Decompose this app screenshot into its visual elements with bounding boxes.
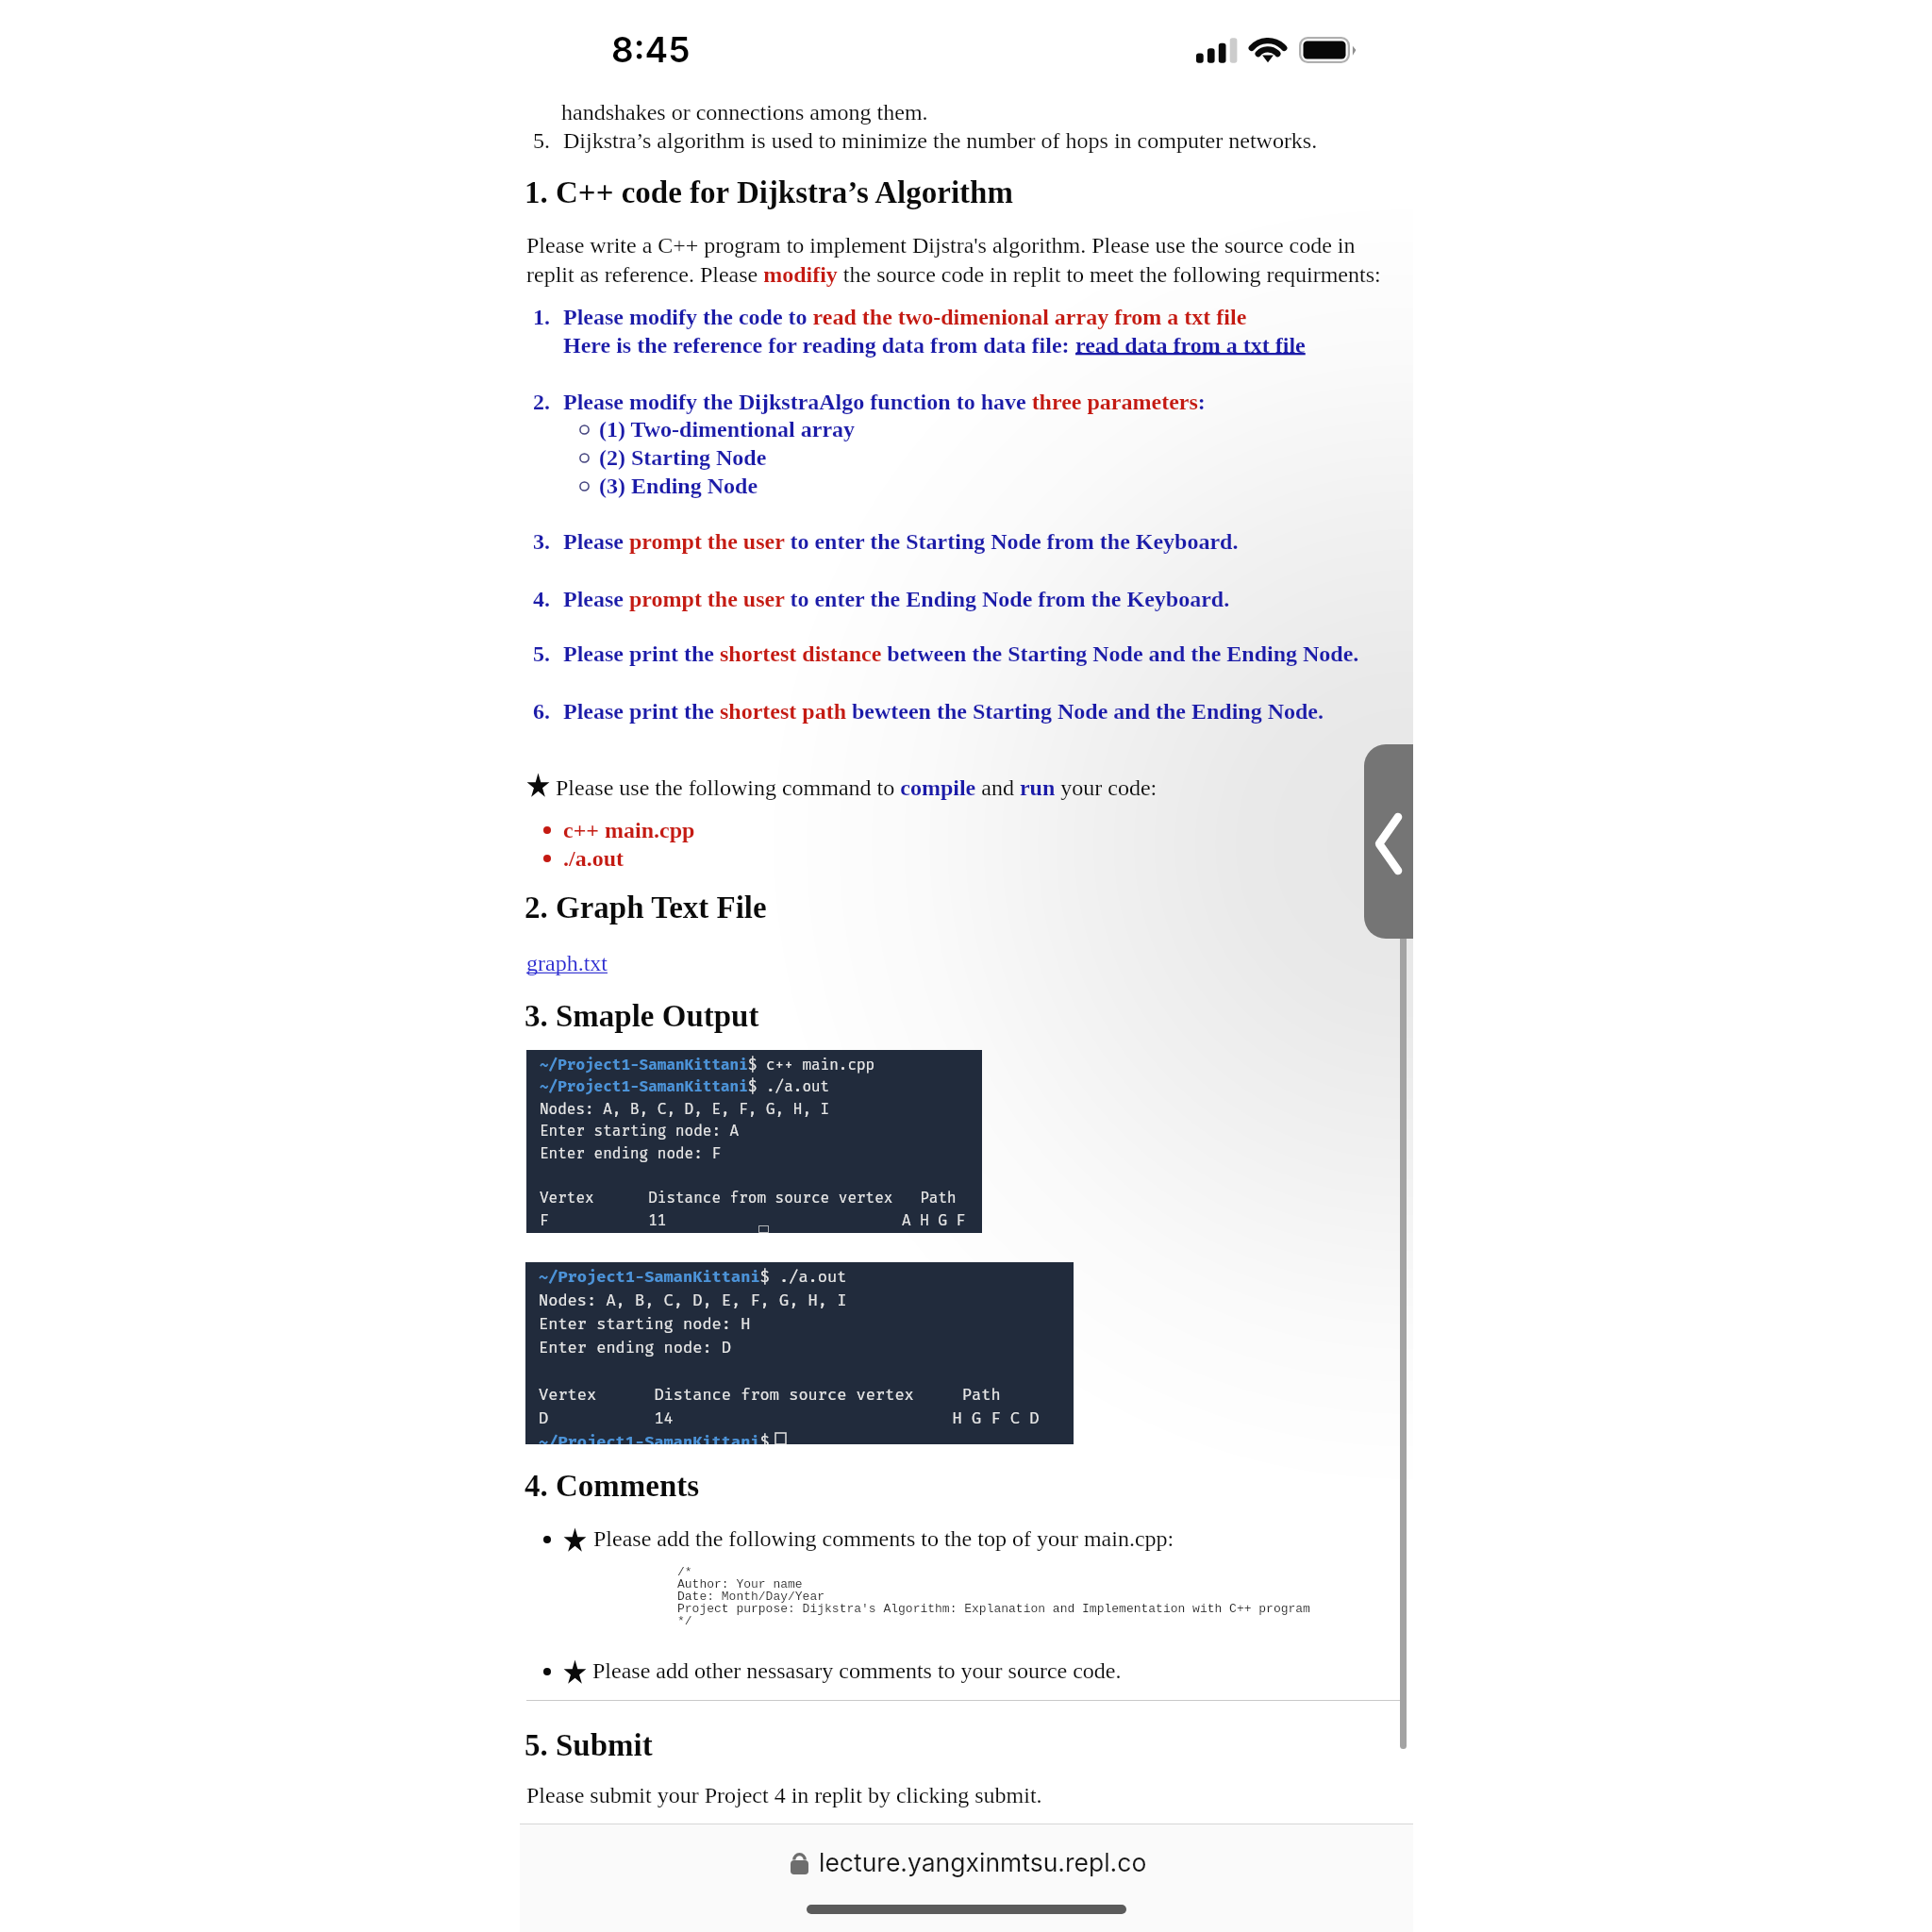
button[interactable]: read data from a txt file bbox=[1075, 333, 1306, 358]
staticText: 3. Smaple Output bbox=[525, 999, 759, 1034]
staticText: ./a.out bbox=[563, 846, 625, 872]
staticText: graph.txt bbox=[526, 951, 608, 976]
staticText: 8:45 bbox=[611, 28, 691, 71]
staticText: 5. bbox=[533, 641, 550, 667]
staticText: */ bbox=[677, 1614, 692, 1628]
staticText: Vertex Distance from source vertex Path bbox=[539, 1385, 1001, 1404]
staticText: Nodes: A, B, C, D, E, F, G, H, I bbox=[540, 1100, 830, 1118]
staticText: 5. bbox=[533, 128, 550, 154]
staticText: ~/Project1-SamanKittani$ c++ main.cpp bbox=[540, 1056, 875, 1074]
staticText: /* bbox=[677, 1565, 692, 1579]
staticText: ~/Project1-SamanKittani$ ./a.out bbox=[540, 1077, 830, 1095]
staticText: 4. Comments bbox=[525, 1469, 700, 1504]
staticText: 1. bbox=[533, 305, 550, 330]
staticText: 1. C++ code for Dijkstra’s Algorithm bbox=[525, 175, 1013, 210]
staticText: 2. Graph Text File bbox=[525, 891, 767, 925]
staticText: (1) Two-dimentional array bbox=[599, 417, 856, 442]
staticText: Please add other nessasary comments to y… bbox=[592, 1658, 1122, 1684]
staticText: Enter ending node: F bbox=[540, 1144, 722, 1162]
staticText: read data from a txt file bbox=[1075, 333, 1306, 358]
staticText: c++ main.cpp bbox=[563, 818, 695, 843]
staticText: Nodes: A, B, C, D, E, F, G, H, I bbox=[539, 1291, 847, 1309]
staticText: Please add the following comments to the… bbox=[593, 1526, 1174, 1552]
staticText: Enter ending node: D bbox=[539, 1338, 731, 1357]
staticText: Please print the shortest distance betwe… bbox=[563, 641, 1359, 667]
staticText: D 14 H G F C D bbox=[539, 1408, 1040, 1427]
staticText: Please modify the DijkstraAlgo function … bbox=[563, 390, 1206, 415]
staticText: Author: Your name bbox=[677, 1577, 803, 1591]
staticText: ~/Project1-SamanKittani$ ./a.out bbox=[539, 1267, 847, 1286]
staticText: replit as reference. Please modifiy the … bbox=[526, 262, 1381, 288]
staticText: Please modify the code to read the two-d… bbox=[563, 305, 1247, 330]
staticText: 6. bbox=[533, 699, 550, 724]
staticText: 3. bbox=[533, 529, 550, 555]
staticText: F 11 A H G F bbox=[540, 1211, 966, 1229]
button[interactable]: Home indicator bbox=[807, 1905, 1126, 1914]
staticText: Date: Month/Day/Year bbox=[677, 1590, 825, 1604]
staticText: Please prompt the user to enter the Endi… bbox=[563, 587, 1230, 612]
staticText: Project purpose: Dijkstra's Algorithm: E… bbox=[677, 1602, 1310, 1616]
staticText: ~/Project1-SamanKittani$ bbox=[539, 1432, 779, 1444]
staticText: Here is the reference for reading data f… bbox=[563, 333, 1075, 358]
staticText: Enter starting node: A bbox=[540, 1122, 740, 1140]
button[interactable]: lecture.yangxinmtsu.repl.co bbox=[525, 1833, 1413, 1891]
staticText: Vertex Distance from source vertex Path bbox=[540, 1189, 957, 1207]
staticText: (2) Starting Node bbox=[599, 445, 767, 471]
staticText: Please submit your Project 4 in replit b… bbox=[526, 1783, 1042, 1808]
button[interactable]: Show sidebar bbox=[1364, 744, 1413, 939]
staticText: Please use the following command to comp… bbox=[556, 775, 1158, 801]
staticText: 4. bbox=[533, 587, 550, 612]
staticText: 2. bbox=[533, 390, 550, 415]
staticText: Please print the shortest path bewteen t… bbox=[563, 699, 1324, 724]
staticText: Dijkstra’s algorithm is used to minimize… bbox=[563, 128, 1318, 154]
staticText: Please prompt the user to enter the Star… bbox=[563, 529, 1239, 555]
staticText: Enter starting node: H bbox=[539, 1314, 751, 1333]
button[interactable]: graph.txt bbox=[526, 951, 608, 976]
staticText: Please write a C++ program to implement … bbox=[526, 233, 1356, 258]
staticText: 5. Submit bbox=[525, 1728, 653, 1763]
staticText: handshakes or connections among them. bbox=[561, 100, 928, 125]
staticText: lecture.yangxinmtsu.repl.co bbox=[819, 1847, 1147, 1877]
staticText: (3) Ending Node bbox=[599, 474, 758, 499]
